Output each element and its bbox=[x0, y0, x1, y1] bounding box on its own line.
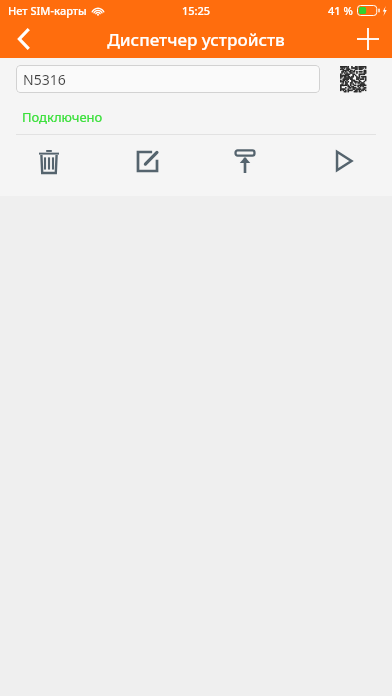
button[interactable]: QR-код bbox=[340, 66, 366, 92]
button[interactable]: Запустить bbox=[302, 136, 384, 186]
staticText: Диспетчер устройств bbox=[107, 28, 285, 51]
button[interactable]: Удалить bbox=[8, 136, 90, 186]
staticText: N5316 bbox=[23, 70, 66, 89]
staticText: Подключено bbox=[22, 108, 103, 126]
button[interactable]: N5316 bbox=[16, 65, 320, 93]
button[interactable]: Изменить bbox=[106, 136, 188, 186]
button[interactable]: Добавить устройство bbox=[344, 20, 392, 58]
staticText: Нет SIM-карты bbox=[8, 3, 87, 18]
button[interactable]: Назад bbox=[0, 20, 46, 58]
button[interactable]: Загрузить bbox=[204, 136, 286, 186]
staticText: 41 % bbox=[328, 3, 353, 18]
staticText: 15:25 bbox=[182, 3, 211, 18]
